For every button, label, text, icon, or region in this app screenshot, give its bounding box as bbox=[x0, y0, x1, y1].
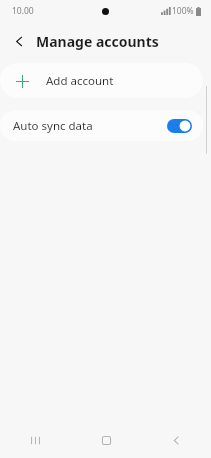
button[interactable]: Back bbox=[6, 28, 32, 54]
button[interactable]: Back bbox=[141, 422, 211, 458]
staticText: Add account bbox=[46, 73, 114, 89]
button[interactable]: Auto sync data toggle bbox=[167, 119, 192, 133]
staticText: Auto sync data bbox=[13, 118, 167, 134]
staticText: Manage accounts bbox=[36, 32, 159, 51]
staticText: 10.00 bbox=[12, 5, 34, 17]
button[interactable]: Add account bbox=[0, 63, 203, 98]
staticText: 100% bbox=[172, 5, 194, 17]
button[interactable]: Auto sync data bbox=[0, 110, 203, 141]
button[interactable]: Recent apps bbox=[0, 422, 71, 458]
button[interactable]: Home bbox=[71, 422, 141, 458]
